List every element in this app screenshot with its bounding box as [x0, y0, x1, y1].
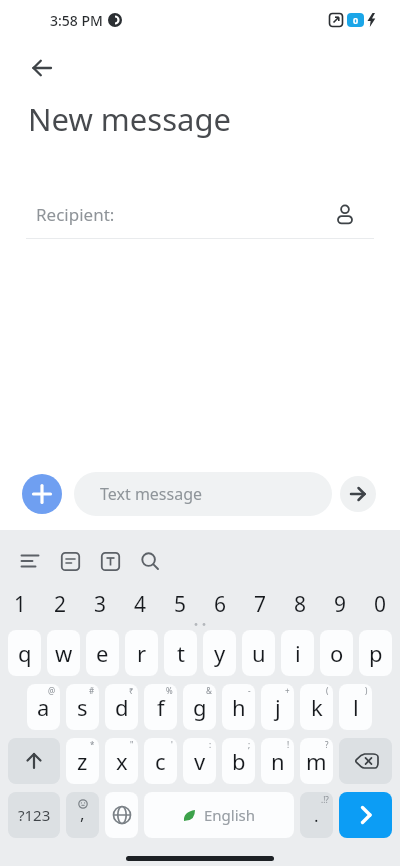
button[interactable]: [339, 738, 392, 784]
button[interactable]: 0: [360, 586, 400, 622]
staticText: 7: [254, 590, 267, 619]
button[interactable]: 4: [120, 586, 160, 622]
button[interactable]: Recipient:: [36, 194, 356, 234]
staticText: g: [193, 692, 207, 722]
staticText: ?: [325, 739, 329, 750]
button[interactable]: [105, 792, 138, 838]
staticText: %: [166, 685, 173, 696]
button[interactable]: 3: [80, 586, 120, 622]
staticText: 9: [334, 590, 347, 619]
button[interactable]: z: [66, 738, 99, 784]
staticText: English: [204, 805, 256, 825]
button[interactable]: r: [125, 630, 158, 676]
button[interactable]: c: [144, 738, 177, 784]
staticText: h: [232, 692, 246, 722]
button[interactable]: 8: [280, 586, 320, 622]
button[interactable]: .: [300, 792, 333, 838]
button[interactable]: [50, 541, 90, 581]
button[interactable]: a: [27, 684, 60, 730]
staticText: t: [177, 638, 185, 668]
button[interactable]: [339, 792, 392, 838]
staticText: 1: [14, 590, 27, 619]
button[interactable]: [28, 54, 56, 82]
button[interactable]: [8, 738, 60, 784]
staticText: i: [295, 638, 301, 668]
staticText: ): [365, 685, 368, 696]
staticText: a: [37, 692, 50, 722]
button[interactable]: x: [105, 738, 138, 784]
button[interactable]: k: [300, 684, 333, 730]
button[interactable]: 2: [40, 586, 80, 622]
button[interactable]: m: [300, 738, 333, 784]
staticText: o: [330, 638, 344, 668]
button[interactable]: j: [261, 684, 294, 730]
button[interactable]: s: [66, 684, 99, 730]
staticText: ;: [248, 739, 251, 750]
button[interactable]: p: [359, 630, 392, 676]
staticText: m: [306, 746, 327, 776]
staticText: 3:58 PM: [50, 11, 103, 30]
staticText: ₹: [129, 685, 134, 696]
button[interactable]: 6: [200, 586, 240, 622]
button[interactable]: v: [183, 738, 216, 784]
button[interactable]: u: [242, 630, 275, 676]
staticText: .!?: [321, 794, 329, 805]
button[interactable]: Text message: [74, 472, 332, 516]
staticText: v: [194, 746, 206, 776]
button[interactable]: h: [222, 684, 255, 730]
staticText: +: [285, 685, 290, 696]
staticText: n: [271, 746, 285, 776]
staticText: New message: [28, 98, 231, 140]
staticText: 4: [134, 590, 147, 619]
button[interactable]: 7: [240, 586, 280, 622]
button[interactable]: [22, 474, 62, 514]
staticText: x: [116, 746, 128, 776]
button[interactable]: y: [203, 630, 236, 676]
staticText: 3: [94, 590, 107, 619]
button[interactable]: n: [261, 738, 294, 784]
staticText: j: [275, 692, 281, 722]
staticText: ?123: [18, 805, 51, 825]
staticText: 0: [374, 590, 387, 619]
button[interactable]: 1: [0, 586, 40, 622]
staticText: ': [171, 739, 173, 750]
button[interactable]: w: [47, 630, 80, 676]
button[interactable]: q: [8, 630, 41, 676]
staticText: l: [353, 692, 359, 722]
button[interactable]: ,: [66, 792, 99, 838]
button[interactable]: 9: [320, 586, 360, 622]
button[interactable]: ?123: [8, 792, 60, 838]
staticText: ,: [80, 802, 85, 825]
staticText: r: [137, 638, 147, 668]
button[interactable]: 5: [160, 586, 200, 622]
staticText: ": [130, 739, 134, 750]
button[interactable]: [340, 476, 376, 512]
staticText: w: [55, 638, 73, 668]
staticText: *: [90, 739, 95, 750]
staticText: .: [314, 804, 319, 827]
button[interactable]: g: [183, 684, 216, 730]
button[interactable]: English: [144, 792, 294, 838]
staticText: @: [48, 685, 56, 696]
button[interactable]: i: [281, 630, 314, 676]
staticText: u: [252, 638, 266, 668]
button[interactable]: l: [339, 684, 372, 730]
staticText: y: [214, 638, 226, 668]
staticText: &: [206, 685, 212, 696]
staticText: k: [311, 692, 323, 722]
staticText: Recipient:: [36, 203, 115, 226]
staticText: 6: [214, 590, 227, 619]
staticText: f: [157, 692, 165, 722]
button[interactable]: [10, 541, 50, 581]
button[interactable]: o: [320, 630, 353, 676]
button[interactable]: [90, 541, 130, 581]
button[interactable]: b: [222, 738, 255, 784]
button[interactable]: f: [144, 684, 177, 730]
button[interactable]: e: [86, 630, 119, 676]
button[interactable]: t: [164, 630, 197, 676]
staticText: :: [209, 739, 212, 750]
staticText: e: [96, 638, 109, 668]
button[interactable]: d: [105, 684, 138, 730]
button[interactable]: [130, 541, 170, 581]
staticText: 5: [174, 590, 187, 619]
